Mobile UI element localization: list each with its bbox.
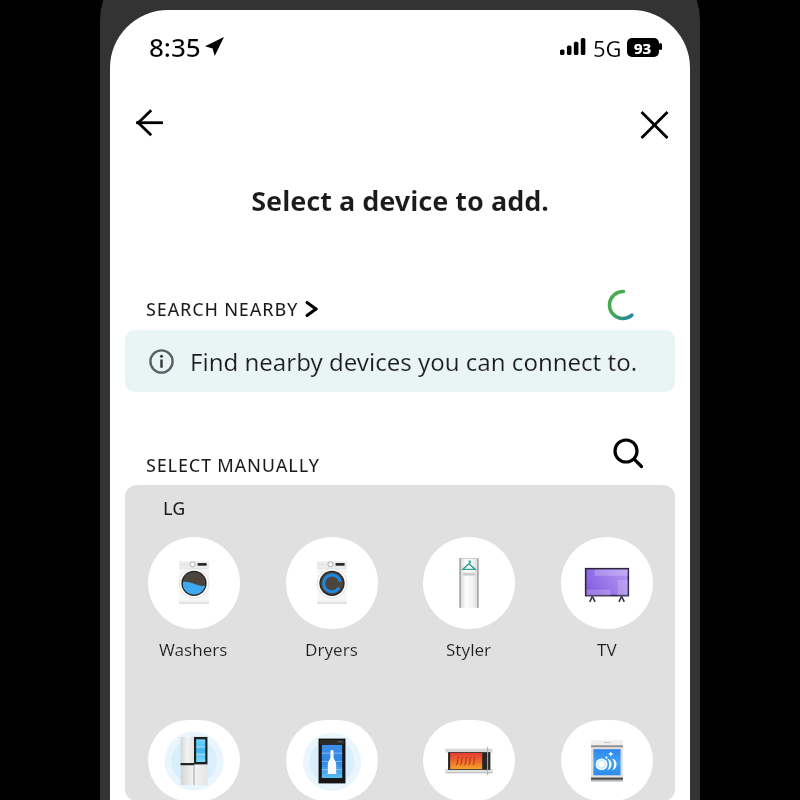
staticText: LG [163,496,186,521]
button[interactable]: Washers [125,537,262,661]
staticText: Find nearby devices you can connect to. [190,345,638,378]
staticText: Dryers [305,638,358,661]
button[interactable]: Wine Cellar [263,720,400,800]
button[interactable]: Refrigerators [125,720,262,800]
staticText: Styler [446,638,492,661]
button[interactable]: Search [600,425,652,477]
staticText: 5G [593,33,622,63]
button[interactable]: Styler [400,537,537,661]
button[interactable]: Dishwashers [538,720,675,800]
staticText: 93 [634,38,652,57]
button[interactable]: TV [538,537,675,661]
button[interactable]: Find nearby devices you can connect to. [125,330,675,392]
button[interactable]: Close [617,89,665,137]
button[interactable]: Ovens [400,720,537,800]
staticText: 8:35 [149,29,201,64]
staticText: Select a device to add. [110,182,690,219]
staticText: SELECT MANUALLY [146,453,320,478]
staticText: SEARCH NEARBY [146,297,299,322]
staticText: TV [597,638,617,661]
button[interactable]: Dryers [263,537,400,661]
staticText: Washers [159,638,228,661]
button[interactable]: Back [113,89,161,137]
button[interactable]: SEARCH NEARBY [140,292,323,326]
